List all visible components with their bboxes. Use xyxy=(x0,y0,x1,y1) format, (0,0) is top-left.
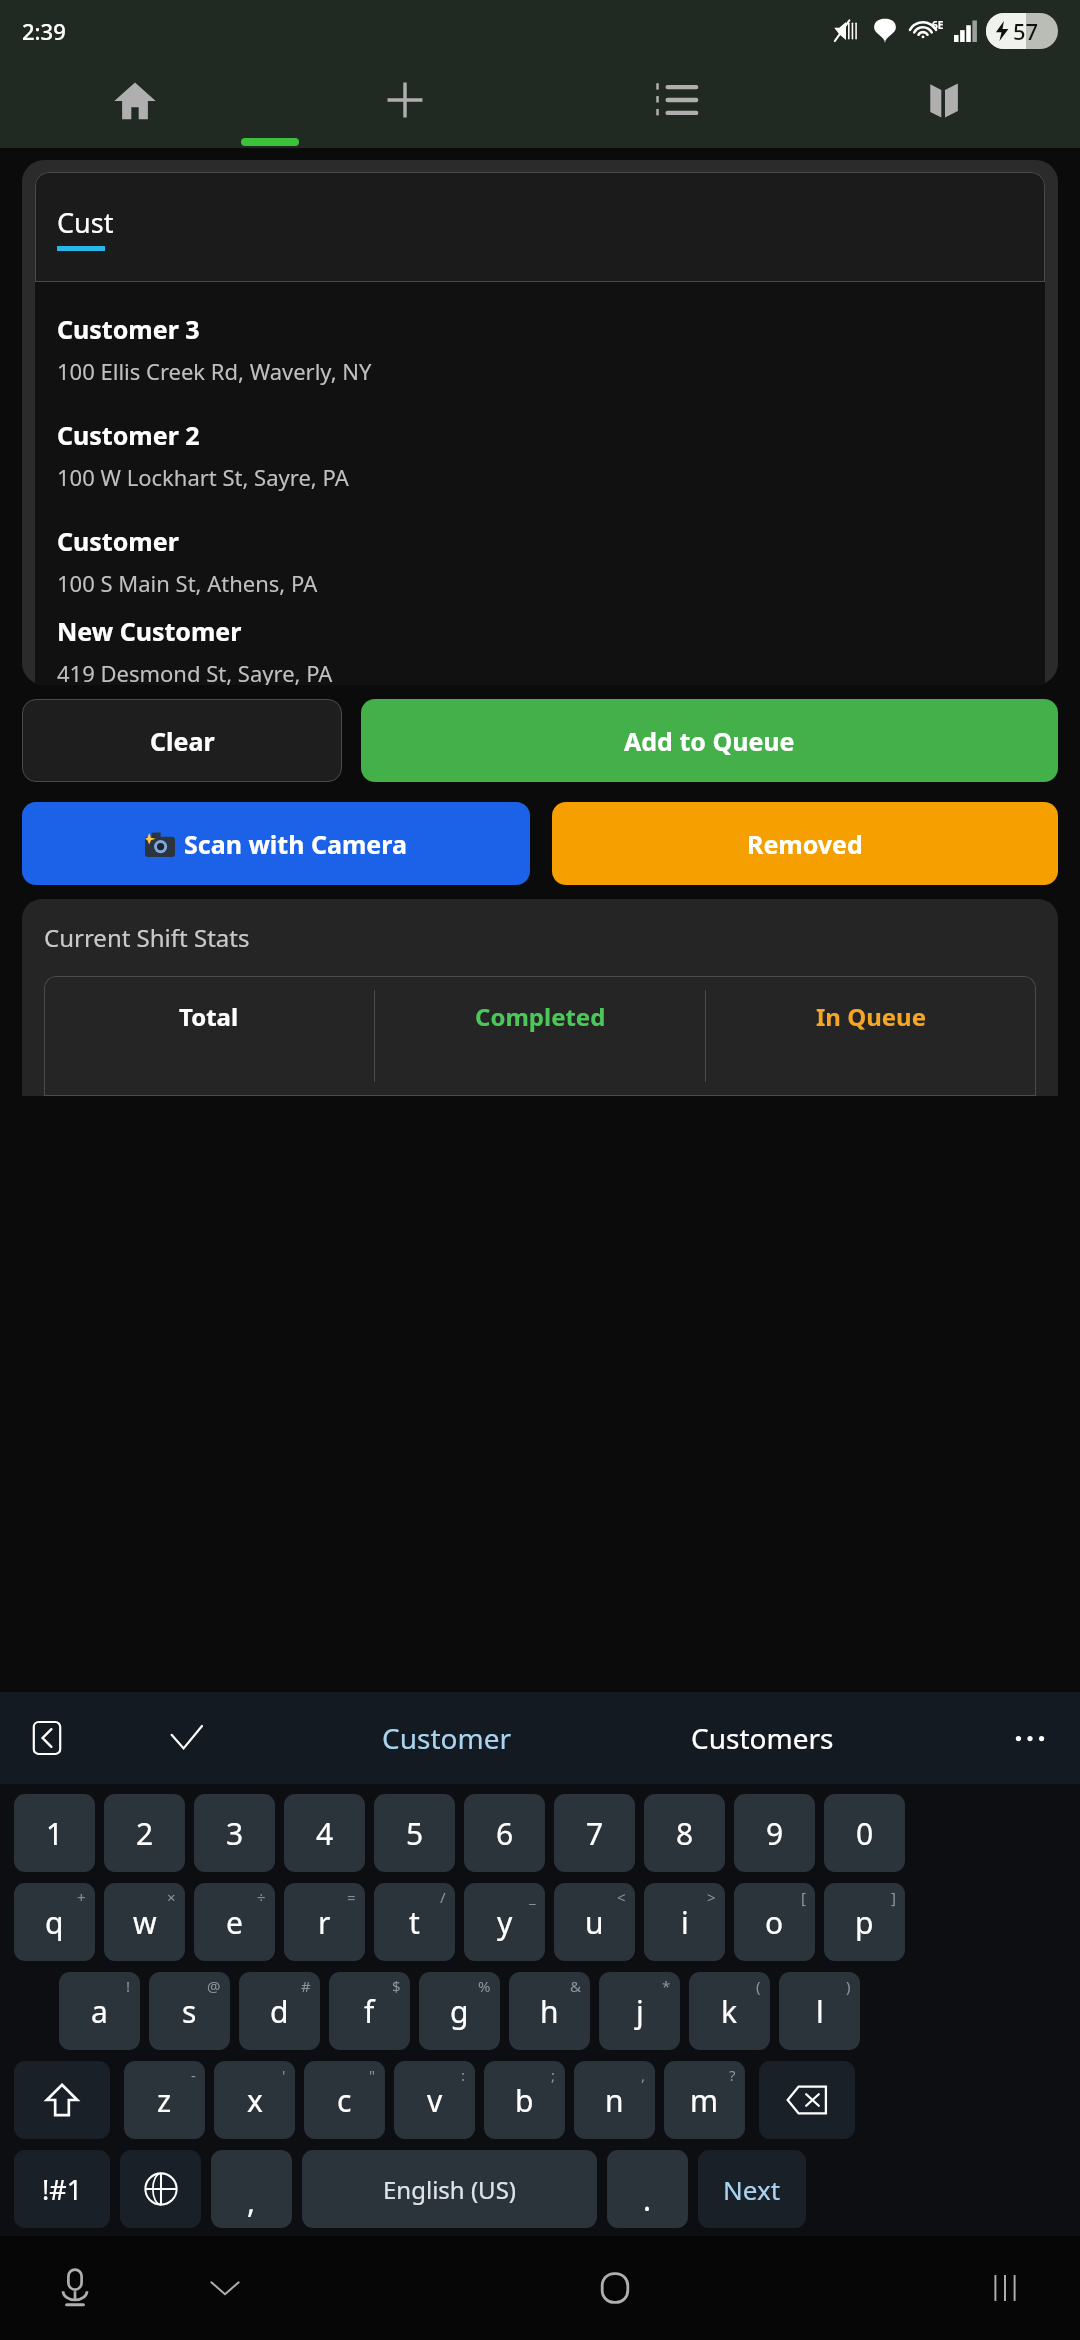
button[interactable]: b xyxy=(484,2061,565,2139)
staticText: t xyxy=(409,1902,420,1943)
button[interactable]: List xyxy=(540,62,810,138)
staticText: q xyxy=(45,1902,64,1943)
button[interactable]: Check xyxy=(158,1710,214,1766)
button[interactable]: !#1 xyxy=(14,2150,110,2228)
button[interactable]: Customer xyxy=(370,1719,523,1757)
button[interactable]: Customer 3 xyxy=(57,296,1045,402)
button[interactable]: Cust xyxy=(35,172,1045,282)
button[interactable]: Add to Queue xyxy=(361,699,1058,782)
button[interactable]: y xyxy=(464,1883,545,1961)
button[interactable]: j xyxy=(599,1972,680,2050)
staticText: ( xyxy=(756,1976,761,1996)
button[interactable]: Home xyxy=(0,62,270,138)
button[interactable]: Customers xyxy=(679,1719,846,1757)
button[interactable]: Next xyxy=(698,2150,806,2228)
button[interactable]: r xyxy=(284,1883,365,1961)
staticText: d xyxy=(270,1991,289,2032)
button[interactable]: 6 xyxy=(464,1794,545,1872)
button[interactable]: t xyxy=(374,1883,455,1961)
staticText: ? xyxy=(729,2065,736,2085)
button[interactable]: 2 xyxy=(104,1794,185,1872)
button[interactable]: e xyxy=(194,1883,275,1961)
button[interactable]: 9 xyxy=(734,1794,815,1872)
button[interactable]: Removed xyxy=(552,802,1058,885)
button[interactable]: Total xyxy=(44,976,374,1096)
button[interactable]: , xyxy=(211,2150,292,2228)
button[interactable]: 3 xyxy=(194,1794,275,1872)
staticText: y xyxy=(497,1902,513,1943)
button[interactable]: f xyxy=(329,1972,410,2050)
button[interactable]: Backspace xyxy=(759,2061,855,2139)
button[interactable]: Change language xyxy=(120,2150,201,2228)
button[interactable]: 7 xyxy=(554,1794,635,1872)
button[interactable]: English (US) xyxy=(302,2150,597,2228)
button[interactable]: v xyxy=(394,2061,475,2139)
staticText: p xyxy=(855,1902,874,1943)
button[interactable]: Add xyxy=(270,62,540,138)
staticText: i xyxy=(681,1902,689,1943)
staticText: s xyxy=(182,1991,197,2032)
staticText: 5 xyxy=(406,1813,424,1854)
button[interactable]: Voice input xyxy=(0,2236,150,2340)
button[interactable]: Clear xyxy=(22,699,342,782)
staticText: ' xyxy=(282,2065,286,2085)
button[interactable]: In Queue xyxy=(706,976,1036,1096)
staticText: ; xyxy=(551,2065,556,2085)
staticText: u xyxy=(585,1902,604,1943)
button[interactable]: . xyxy=(607,2150,688,2228)
button[interactable]: z xyxy=(124,2061,205,2139)
button[interactable]: l xyxy=(779,1972,860,2050)
staticText: > xyxy=(707,1887,716,1907)
button[interactable]: m xyxy=(664,2061,745,2139)
button[interactable]: a xyxy=(59,1972,140,2050)
button[interactable]: 8 xyxy=(644,1794,725,1872)
button[interactable]: k xyxy=(689,1972,770,2050)
button[interactable]: s xyxy=(149,1972,230,2050)
staticText: l xyxy=(816,1991,824,2032)
staticText: 100 S Main St, Athens, PA xyxy=(57,568,318,598)
staticText: , xyxy=(641,2065,646,2085)
button[interactable]: g xyxy=(419,1972,500,2050)
staticText: a xyxy=(91,1991,108,2032)
staticText: w xyxy=(133,1902,157,1943)
button[interactable]: Hide keyboard xyxy=(150,2236,300,2340)
button[interactable]: w xyxy=(104,1883,185,1961)
button[interactable]: n xyxy=(574,2061,655,2139)
staticText: b xyxy=(515,2080,534,2121)
button[interactable]: Scan with Camera xyxy=(22,802,530,885)
button[interactable]: d xyxy=(239,1972,320,2050)
button[interactable]: q xyxy=(14,1883,95,1961)
button[interactable]: p xyxy=(824,1883,905,1961)
button[interactable]: i xyxy=(644,1883,725,1961)
button[interactable]: Previous xyxy=(26,1715,72,1761)
staticText: 6E xyxy=(932,18,944,32)
button[interactable]: 5 xyxy=(374,1794,455,1872)
button[interactable]: Customer xyxy=(57,508,1045,614)
staticText: - xyxy=(191,2065,196,2085)
staticText: 4 xyxy=(316,1813,334,1854)
button[interactable]: u xyxy=(554,1883,635,1961)
staticText: c xyxy=(337,2080,352,2121)
staticText: + xyxy=(77,1887,86,1907)
button[interactable]: 0 xyxy=(824,1794,905,1872)
button[interactable]: c xyxy=(304,2061,385,2139)
button[interactable]: x xyxy=(214,2061,295,2139)
staticText: _ xyxy=(529,1887,536,1907)
button[interactable]: New Customer xyxy=(57,614,1045,685)
staticText: 2:39 xyxy=(22,16,66,46)
staticText: g xyxy=(450,1991,469,2032)
staticText: $ xyxy=(392,1976,401,1996)
button[interactable]: 1 xyxy=(14,1794,95,1872)
button[interactable]: o xyxy=(734,1883,815,1961)
button[interactable]: Home xyxy=(540,2236,690,2340)
button[interactable]: Customer 2 xyxy=(57,402,1045,508)
button[interactable]: Map xyxy=(810,62,1080,138)
button[interactable]: 4 xyxy=(284,1794,365,1872)
button[interactable]: More options xyxy=(1002,1710,1058,1766)
staticText: / xyxy=(440,1887,446,1907)
button[interactable]: Completed xyxy=(375,976,705,1096)
staticText: 9 xyxy=(766,1813,784,1854)
button[interactable]: Recent apps xyxy=(930,2236,1080,2340)
button[interactable]: Shift xyxy=(14,2061,110,2139)
button[interactable]: h xyxy=(509,1972,590,2050)
